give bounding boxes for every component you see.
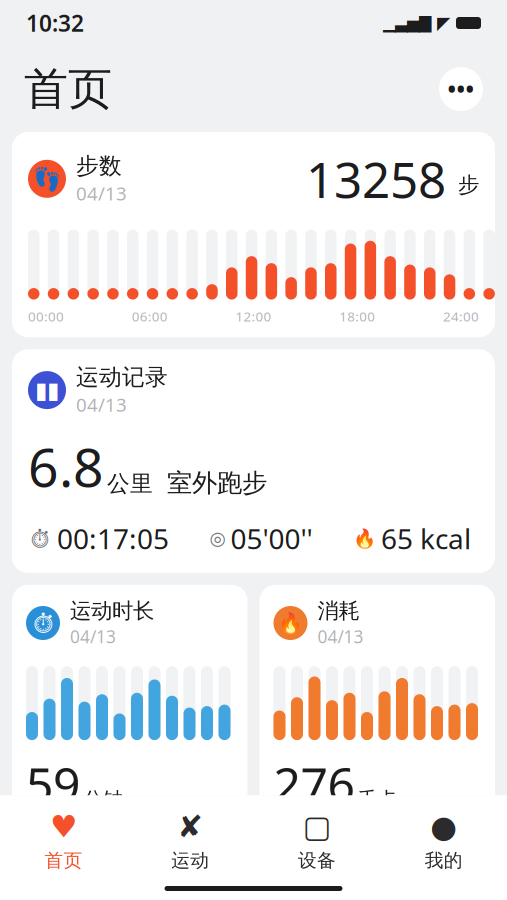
staticText: ⏱ [30, 612, 55, 634]
staticText: 室外跑步 [167, 468, 267, 499]
staticText: 运动 [171, 849, 209, 872]
staticText: 05'00'' [230, 520, 312, 557]
button[interactable]: ▮▮ [12, 349, 495, 573]
staticText: 04/13 [317, 625, 363, 648]
staticText: 13258 [306, 146, 446, 211]
staticText: 10:32 [26, 8, 84, 38]
staticText: 276 [273, 752, 354, 816]
staticText: 消耗 [317, 598, 359, 624]
staticText: 04/13 [70, 625, 116, 648]
staticText: 24:00 [443, 308, 479, 325]
button[interactable]: ▢ [253, 801, 380, 880]
staticText: 我的 [425, 849, 463, 872]
staticText: ▁▃▅▇ [383, 14, 431, 32]
staticText: 分钟 [83, 787, 123, 812]
staticText: 首页 [44, 849, 82, 872]
staticText: ● [430, 809, 457, 844]
staticText: 👣 [33, 166, 61, 192]
button[interactable]: ✘ [127, 801, 254, 880]
button[interactable]: 👣 [12, 132, 495, 337]
staticText: 运动记录 [76, 363, 168, 391]
button[interactable]: ♥ [0, 801, 127, 880]
staticText: ⏱ [28, 528, 52, 549]
staticText: 04/13 [76, 181, 127, 206]
staticText: 59 [26, 752, 80, 816]
staticText: 设备 [298, 849, 336, 872]
staticText: 🔥 [353, 528, 376, 549]
staticText: 步数 [76, 152, 122, 180]
staticText: 18:00 [339, 308, 375, 325]
button[interactable]: 🔥 [259, 585, 495, 832]
button[interactable]: More options [439, 67, 483, 111]
staticText: 00:17:05 [57, 520, 169, 557]
button[interactable]: ⏱ [12, 585, 247, 832]
staticText: ▢ [302, 809, 331, 844]
staticText: 🔥 [278, 612, 303, 634]
staticText: ♥ [50, 809, 77, 844]
staticText: ••• [447, 74, 474, 104]
staticText: 04/13 [76, 392, 127, 417]
staticText: 运动时长 [70, 598, 154, 624]
staticText: 步 [458, 172, 479, 198]
staticText: 千卡 [357, 787, 397, 812]
staticText: 00:00 [28, 308, 64, 325]
staticText: 65 kcal [381, 520, 471, 557]
staticText: 公里 [107, 470, 153, 498]
staticText: 6.8 [28, 431, 104, 502]
staticText: ◤ [437, 13, 450, 33]
staticText: 首页 [24, 62, 112, 116]
staticText: 06:00 [132, 308, 168, 325]
staticText: 12:00 [235, 308, 271, 325]
staticText: ◎ [209, 528, 225, 549]
staticText: ▮▮ [35, 377, 59, 403]
button[interactable]: ● [380, 801, 507, 880]
staticText: ✘ [177, 809, 203, 844]
